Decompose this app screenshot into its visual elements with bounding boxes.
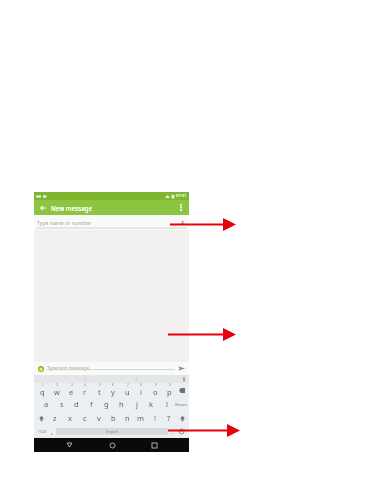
staticText: 9 [155, 383, 157, 387]
staticText: z [53, 413, 57, 423]
button[interactable]: m [134, 411, 148, 425]
staticText: English [106, 429, 119, 434]
staticText: t [98, 387, 101, 397]
staticText: w [54, 387, 60, 397]
button[interactable]: g [99, 397, 114, 411]
button[interactable]: c [77, 411, 92, 425]
staticText: v [97, 413, 101, 423]
staticText: . [171, 427, 173, 437]
staticText: j [136, 399, 138, 409]
button[interactable]: v [92, 411, 106, 425]
button[interactable]: a [39, 397, 54, 411]
staticText: h [119, 399, 124, 409]
staticText: , [51, 427, 53, 437]
button[interactable]: Back [37, 202, 48, 213]
button[interactable]: 7 [120, 383, 134, 397]
staticText: o [153, 387, 158, 397]
button[interactable]: d [69, 397, 84, 411]
staticText: k [149, 399, 154, 409]
button[interactable]: 1 [35, 383, 50, 397]
staticText: x [68, 413, 72, 423]
staticText: c [83, 413, 87, 423]
button[interactable]: Back [61, 438, 77, 452]
staticText: Return [175, 402, 187, 407]
button[interactable]: Return [174, 397, 188, 411]
staticText: q [40, 387, 45, 397]
button[interactable]: Add recipient from contacts [178, 218, 187, 227]
button[interactable]: f [84, 397, 99, 411]
button[interactable]: k [144, 397, 159, 411]
button[interactable]: Voice input [181, 376, 187, 382]
button[interactable]: 2 [50, 383, 64, 397]
button[interactable]: j [129, 397, 144, 411]
staticText: l [166, 399, 168, 409]
staticText: m [137, 413, 145, 423]
staticText: New message [51, 204, 93, 212]
button[interactable]: Type name or number [34, 215, 189, 230]
staticText: 8 [140, 383, 142, 387]
staticText: f [90, 399, 93, 409]
button[interactable]: 0 [162, 383, 176, 397]
staticText: p [167, 387, 172, 397]
staticText: 2 [56, 383, 58, 387]
button[interactable]: 5 [92, 383, 106, 397]
staticText: e [69, 387, 74, 397]
button[interactable]: h [114, 397, 129, 411]
staticText: 4 [84, 383, 86, 387]
staticText: g [104, 399, 109, 409]
button[interactable]: x [62, 411, 77, 425]
button[interactable]: Home [104, 438, 120, 452]
button[interactable]: English [56, 428, 168, 435]
button[interactable]: ! [148, 411, 162, 425]
button[interactable]: 8 [134, 383, 148, 397]
staticText: b [111, 413, 116, 423]
button[interactable]: More options [175, 202, 186, 213]
button[interactable]: , [48, 425, 56, 438]
staticText: ?123 [38, 429, 47, 434]
staticText: Type text message [47, 365, 89, 372]
button[interactable]: ?123 [36, 425, 48, 438]
staticText: r [83, 387, 87, 397]
button[interactable]: 6 [106, 383, 120, 397]
staticText: 07:31 [176, 193, 187, 199]
button[interactable]: Shift [176, 411, 188, 425]
staticText: 7 [127, 383, 129, 387]
button[interactable]: Emoji keyboard [176, 425, 187, 438]
staticText: ! [154, 413, 157, 423]
button[interactable]: 3 [64, 383, 78, 397]
staticText: 6 [112, 383, 114, 387]
button[interactable]: 9 [148, 383, 162, 397]
button[interactable]: b [106, 411, 120, 425]
button[interactable]: Shift [35, 411, 47, 425]
staticText: 0 [169, 383, 171, 387]
staticText: 3 [71, 383, 73, 387]
button[interactable]: . [168, 425, 176, 438]
staticText: d [74, 399, 79, 409]
staticText: u [125, 387, 130, 397]
staticText: y [111, 387, 115, 397]
button[interactable]: Recent apps [146, 438, 162, 452]
staticText: 1 [42, 383, 44, 387]
button[interactable]: z [47, 411, 62, 425]
button[interactable]: s [54, 397, 69, 411]
staticText: n [125, 413, 130, 423]
staticText: a [44, 399, 49, 409]
button[interactable]: n [120, 411, 134, 425]
button[interactable]: Insert emoji [37, 365, 45, 373]
button[interactable]: Backspace [176, 383, 188, 397]
staticText: i [140, 387, 142, 397]
staticText: 5 [99, 383, 101, 387]
staticText: s [60, 399, 64, 409]
staticText: ? [167, 413, 171, 423]
button[interactable]: ? [162, 411, 176, 425]
staticText: Type name or number [37, 219, 92, 226]
button[interactable]: l [159, 397, 174, 411]
button[interactable]: 4 [78, 383, 92, 397]
button[interactable]: Send message [177, 364, 186, 373]
